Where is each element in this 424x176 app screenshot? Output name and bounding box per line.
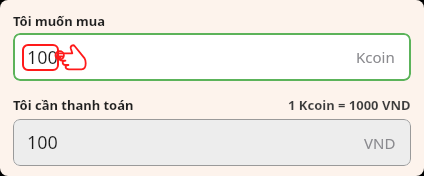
staticText: Tôi cần thanh toán (13, 96, 134, 114)
staticText: Tôi muốn mua (13, 12, 105, 30)
other: Tap to enter amount (53, 41, 89, 73)
button[interactable]: 100 (13, 119, 411, 166)
staticText: 100 (27, 45, 58, 70)
staticText: 1 Kcoin = 1000 VND (288, 96, 411, 114)
button[interactable]: 100 (13, 33, 411, 81)
staticText: Kcoin (356, 47, 395, 67)
staticText: 100 (27, 130, 58, 155)
staticText: VND (364, 133, 396, 153)
